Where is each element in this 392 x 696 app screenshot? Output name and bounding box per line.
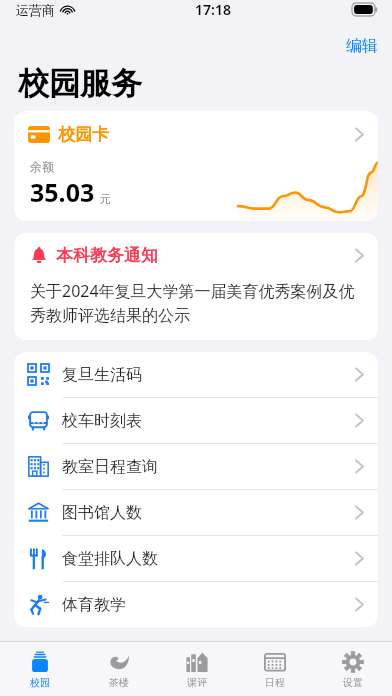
staticText: 35.03 bbox=[30, 175, 95, 209]
staticText: 图书馆人数 bbox=[62, 503, 142, 523]
button[interactable]: 校园 bbox=[0, 642, 79, 696]
button[interactable]: 编辑 bbox=[332, 34, 392, 58]
staticText: 校园卡 bbox=[58, 124, 109, 145]
staticText: 课评 bbox=[187, 676, 207, 689]
staticText: 编辑 bbox=[346, 36, 378, 56]
button[interactable]: 校车时刻表 bbox=[14, 398, 378, 443]
button[interactable]: 食堂排队人数 bbox=[14, 536, 378, 581]
button[interactable]: 课评 bbox=[158, 642, 236, 696]
staticText: 运营商 bbox=[16, 2, 55, 18]
button[interactable]: 日程 bbox=[236, 642, 314, 696]
staticText: 校园服务 bbox=[18, 64, 142, 103]
staticText: 17:18 bbox=[195, 0, 231, 19]
staticText: 教室日程查询 bbox=[62, 457, 158, 477]
button[interactable]: 设置 bbox=[314, 642, 392, 696]
button[interactable]: 体育教学 bbox=[14, 582, 378, 627]
button[interactable]: 本科教务通知 bbox=[14, 233, 378, 340]
staticText: 余额 bbox=[30, 159, 54, 174]
staticText: 日程 bbox=[265, 676, 285, 689]
button[interactable]: 复旦生活码 bbox=[14, 352, 378, 397]
staticText: 茶楼 bbox=[109, 676, 129, 689]
staticText: 设置 bbox=[343, 676, 363, 689]
staticText: 元 bbox=[100, 192, 111, 206]
button[interactable]: 茶楼 bbox=[79, 642, 158, 696]
button[interactable]: 教室日程查询 bbox=[14, 444, 378, 489]
staticText: 本科教务通知 bbox=[56, 245, 158, 266]
button[interactable]: 校园卡 bbox=[14, 111, 378, 221]
button[interactable]: 图书馆人数 bbox=[14, 490, 378, 535]
staticText: 校车时刻表 bbox=[62, 411, 142, 431]
staticText: 复旦生活码 bbox=[62, 365, 142, 385]
staticText: 食堂排队人数 bbox=[62, 549, 158, 569]
staticText: 校园 bbox=[30, 676, 50, 689]
staticText: 体育教学 bbox=[62, 595, 126, 615]
staticText: 关于2024年复旦大学第一届美育优秀案例及优秀教师评选结果的公示 bbox=[30, 280, 364, 326]
